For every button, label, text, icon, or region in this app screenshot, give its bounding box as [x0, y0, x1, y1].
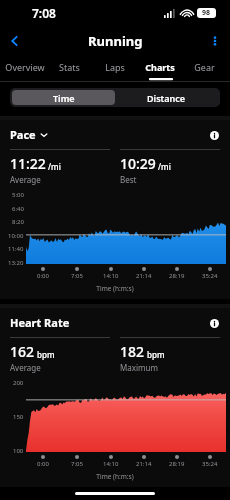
- staticText: 28:19: [169, 272, 185, 280]
- staticText: 35:24: [202, 460, 218, 468]
- staticText: Pace: [10, 127, 36, 142]
- staticText: 11:40: [8, 245, 24, 253]
- staticText: Average: [10, 362, 41, 373]
- staticText: Overview: [5, 61, 45, 73]
- staticText: 8:20: [12, 218, 24, 226]
- button[interactable]: Pace: [10, 127, 48, 142]
- staticText: /mi: [158, 161, 171, 172]
- staticText: Distance: [147, 92, 186, 104]
- staticText: Running: [88, 32, 143, 50]
- staticText: 11:22: [10, 154, 46, 173]
- button[interactable]: Laps: [92, 56, 137, 78]
- staticText: 10:00: [8, 232, 24, 240]
- staticText: 150: [13, 413, 24, 421]
- staticText: Charts: [145, 61, 175, 73]
- staticText: Heart Rate: [10, 315, 70, 330]
- button[interactable]: Info: [208, 317, 220, 329]
- staticText: Maximum: [120, 362, 158, 373]
- staticText: 13:20: [8, 259, 24, 267]
- staticText: Gear: [194, 61, 215, 73]
- staticText: 10:29: [120, 154, 156, 173]
- staticText: Laps: [105, 61, 125, 73]
- staticText: Time (h:m:s): [0, 472, 230, 481]
- staticText: bpm: [37, 349, 55, 360]
- button[interactable]: Heart Rate: [10, 315, 70, 330]
- staticText: 7:05: [71, 460, 83, 468]
- button[interactable]: Stats: [47, 56, 92, 78]
- button[interactable]: Time: [12, 90, 115, 105]
- staticText: 162: [10, 342, 35, 361]
- staticText: 21:14: [136, 460, 152, 468]
- staticText: Stats: [59, 61, 80, 73]
- staticText: Time: [53, 92, 75, 104]
- staticText: 182: [120, 342, 145, 361]
- staticText: 100: [13, 447, 24, 455]
- button[interactable]: More options: [200, 26, 230, 56]
- staticText: bpm: [147, 349, 165, 360]
- staticText: 0:00: [37, 460, 49, 468]
- staticText: 7:05: [71, 272, 83, 280]
- staticText: 0:00: [37, 272, 49, 280]
- button[interactable]: Info: [208, 129, 220, 141]
- staticText: 28:19: [169, 460, 185, 468]
- staticText: 35:24: [202, 272, 218, 280]
- staticText: 6:40: [12, 205, 24, 213]
- button[interactable]: Distance: [115, 90, 218, 105]
- staticText: Best: [120, 174, 137, 185]
- button[interactable]: Gear: [182, 56, 227, 78]
- staticText: 14:10: [103, 272, 119, 280]
- staticText: 21:14: [136, 272, 152, 280]
- staticText: 14:10: [103, 460, 119, 468]
- button[interactable]: Charts: [137, 56, 182, 78]
- staticText: 98: [202, 8, 211, 18]
- button[interactable]: Back: [0, 26, 30, 56]
- staticText: Average: [10, 174, 41, 185]
- staticText: 200: [13, 379, 24, 387]
- staticText: Time (h:m:s): [0, 284, 230, 293]
- staticText: 7:08: [32, 5, 56, 21]
- staticText: 5:00: [12, 191, 24, 199]
- button[interactable]: Overview: [3, 56, 47, 78]
- staticText: /mi: [48, 161, 61, 172]
